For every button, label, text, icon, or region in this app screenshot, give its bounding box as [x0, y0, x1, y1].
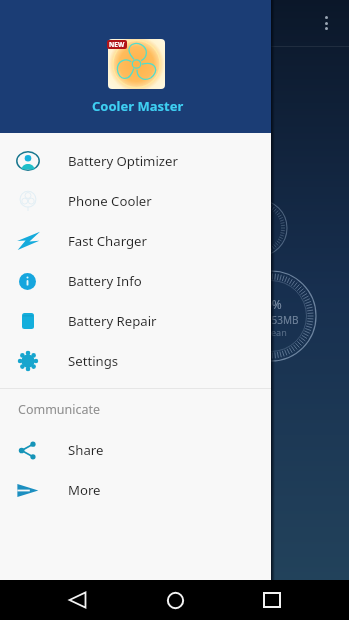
button[interactable]: Battery Optimizer: [0, 141, 271, 181]
staticText: Share: [68, 441, 104, 459]
staticText: Clean: [263, 326, 287, 338]
staticText: Battery Repair: [68, 312, 157, 330]
button[interactable]: Fast Charger: [0, 221, 271, 261]
staticText: Fast Charger: [68, 232, 147, 250]
button[interactable]: Back: [59, 582, 95, 618]
staticText: 1853MB: [260, 313, 299, 327]
button[interactable]: More: [0, 470, 271, 510]
staticText: Battery Optimizer: [68, 152, 178, 170]
staticText: Communicate: [18, 401, 101, 418]
button[interactable]: Home: [157, 582, 193, 618]
button[interactable]: Share: [0, 430, 271, 470]
staticText: More: [68, 481, 101, 499]
button[interactable]: Recents: [254, 582, 290, 618]
button[interactable]: Battery Info: [0, 261, 271, 301]
staticText: Cooler Master: [92, 97, 184, 115]
staticText: 0%: [265, 296, 282, 312]
button[interactable]: Battery Repair: [0, 301, 271, 341]
staticText: NEW: [109, 40, 125, 49]
button[interactable]: Phone Cooler: [0, 181, 271, 221]
button[interactable]: Settings: [0, 341, 271, 381]
button[interactable]: More options: [325, 16, 329, 30]
staticText: Settings: [68, 352, 119, 370]
staticText: Phone Cooler: [68, 192, 152, 210]
staticText: Battery Info: [68, 272, 142, 290]
